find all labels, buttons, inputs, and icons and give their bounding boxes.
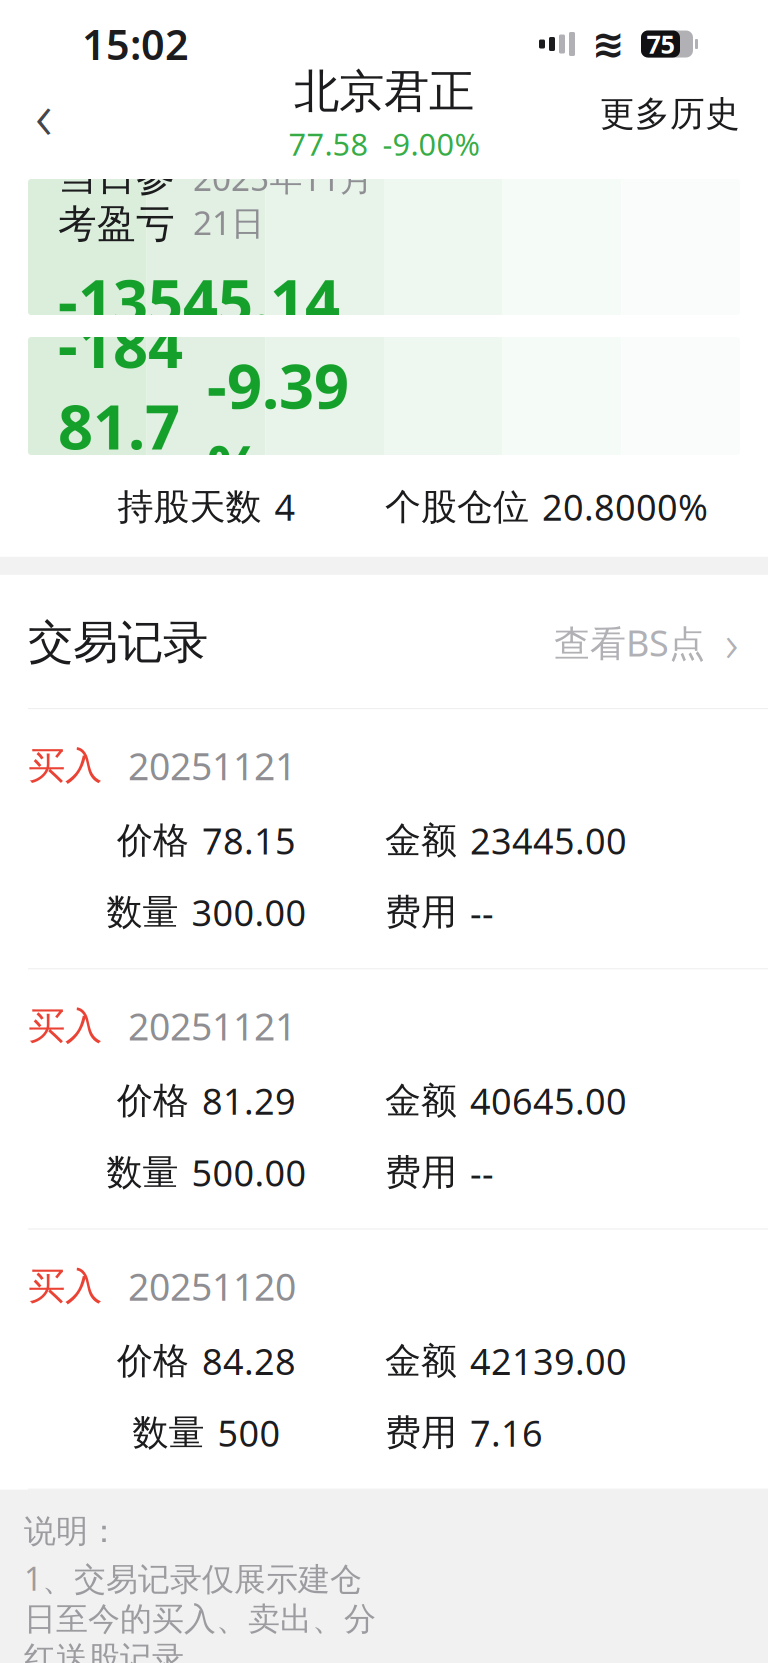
staticText: › xyxy=(725,609,738,676)
button[interactable]: 返回 xyxy=(16,76,72,152)
staticText: 更多历史 xyxy=(600,93,740,135)
staticText: 费用 xyxy=(385,1411,457,1455)
staticText: 浮动盈亏 xyxy=(58,244,214,292)
staticText: 81.29 xyxy=(202,1077,296,1125)
staticText: 500.00 xyxy=(191,1149,306,1196)
staticText: 金额 xyxy=(385,1079,457,1123)
staticText: 费用 xyxy=(385,890,457,934)
staticText: 75 xyxy=(646,27,674,61)
staticText: 300.00 xyxy=(191,888,306,936)
staticText: 查看BS点 xyxy=(554,618,705,666)
staticText: 买入 xyxy=(28,1263,102,1309)
staticText: 个股仓位 xyxy=(385,485,529,529)
staticText: 23445.00 xyxy=(470,817,627,864)
button[interactable]: 查看BS点 xyxy=(550,601,742,684)
staticText: 42139.00 xyxy=(470,1337,627,1385)
staticText: 当日参考盈亏 xyxy=(58,153,175,248)
staticText: 数量 xyxy=(106,890,178,934)
staticText: ≋ xyxy=(592,22,624,66)
staticText: 78.15 xyxy=(202,817,296,864)
staticText: 北京君正 xyxy=(294,64,474,119)
staticText: 15:02 xyxy=(82,17,189,71)
staticText: -9.00% xyxy=(382,123,479,164)
staticText: 价格 xyxy=(117,1339,189,1383)
staticText: 数量 xyxy=(132,1411,204,1455)
staticText: 金额 xyxy=(385,818,457,863)
staticText: 价格 xyxy=(117,818,189,863)
staticText: 40645.00 xyxy=(470,1077,627,1125)
staticText: 20251120 xyxy=(128,1261,296,1311)
staticText: 1、交易记录仅展示建仓日至今的买入、卖出、分红送股记录。 xyxy=(24,1557,376,1663)
staticText: 20251121 xyxy=(128,741,296,791)
staticText: -18481.70 xyxy=(58,304,183,548)
staticText: 4 xyxy=(274,483,295,531)
staticText: 交易记录 xyxy=(28,615,208,670)
staticText: 84.28 xyxy=(202,1337,296,1385)
staticText: -9.39% xyxy=(207,344,349,507)
staticText: 价格 xyxy=(117,1079,189,1123)
staticText: -- xyxy=(470,888,494,936)
staticText: -- xyxy=(470,1149,494,1196)
staticText: -13545.14 xyxy=(58,260,340,341)
staticText: 7.16 xyxy=(470,1409,543,1457)
staticText: 20.8000% xyxy=(542,483,708,531)
staticText: 金额 xyxy=(385,1339,457,1383)
staticText: 费用 xyxy=(385,1150,457,1195)
staticText: ‹ xyxy=(35,70,53,158)
button[interactable]: 更多历史 xyxy=(594,76,746,152)
staticText: 买入 xyxy=(28,743,102,789)
staticText: 持股天数 xyxy=(117,485,261,529)
staticText: 买入 xyxy=(28,1003,102,1049)
staticText: 77.58 xyxy=(288,123,368,164)
staticText: 说明： xyxy=(24,1512,120,1551)
staticText: 2025年11月21日 xyxy=(193,156,373,244)
staticText: 20251121 xyxy=(128,1001,296,1051)
staticText: 数量 xyxy=(106,1150,178,1195)
staticText: 500 xyxy=(217,1409,280,1457)
